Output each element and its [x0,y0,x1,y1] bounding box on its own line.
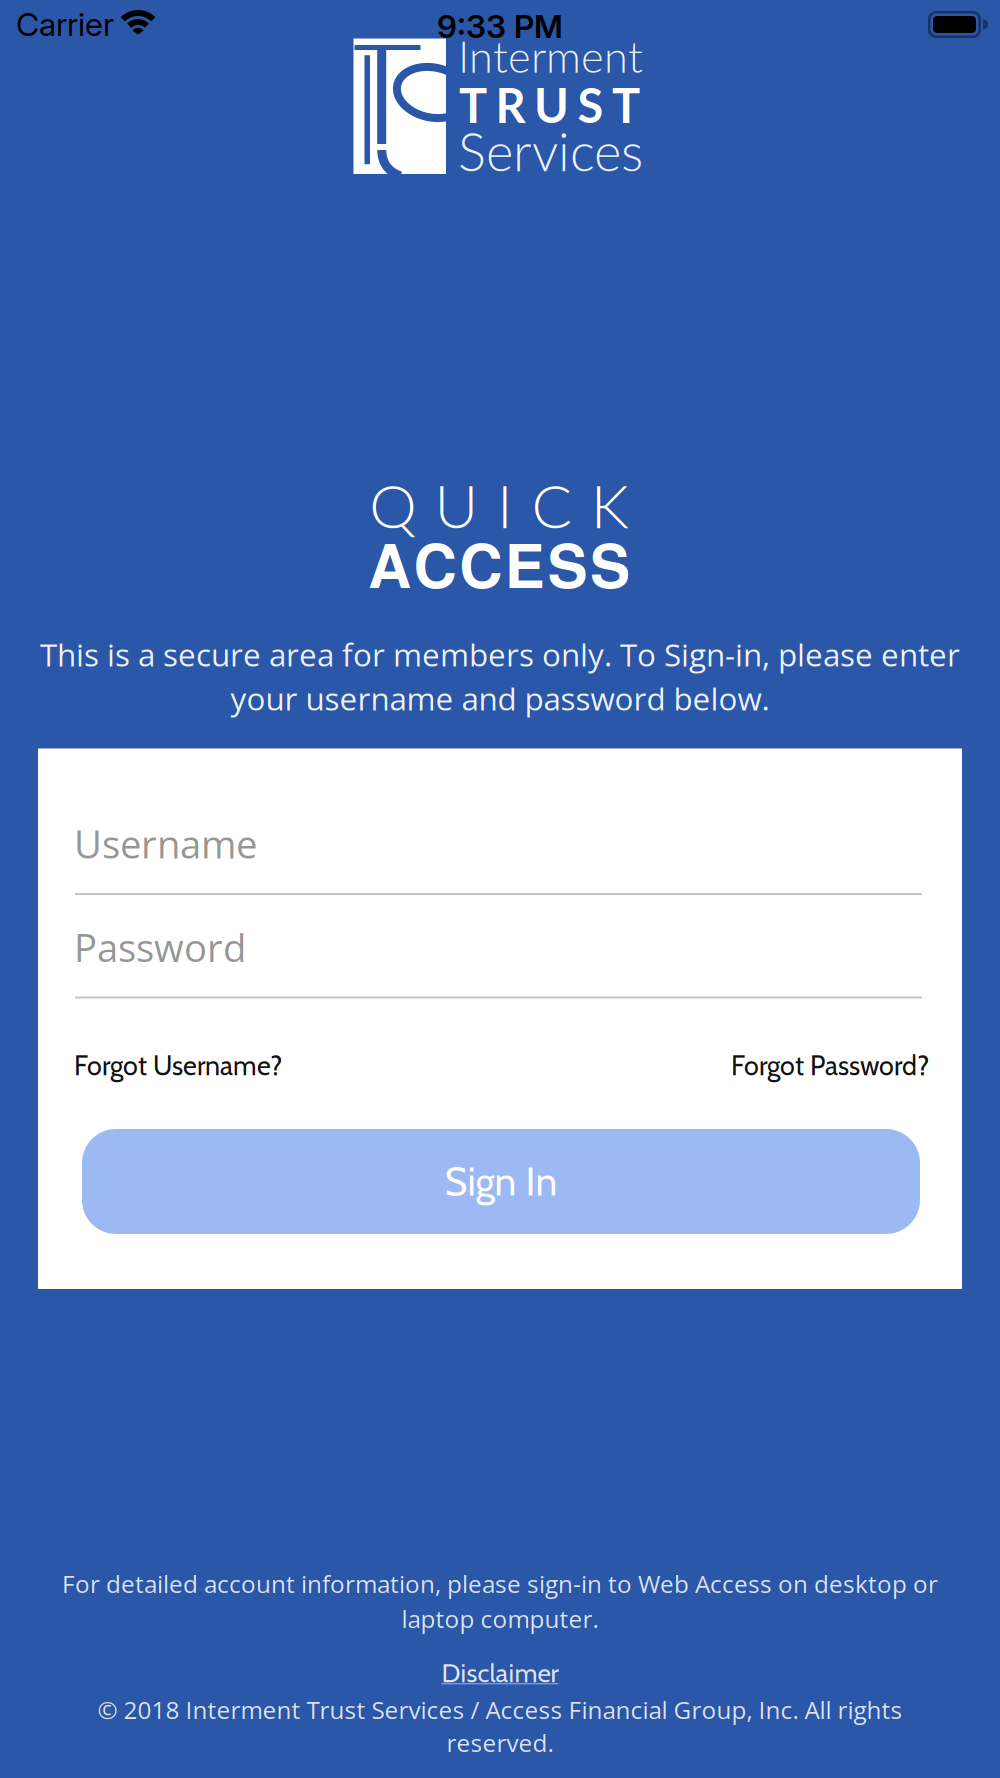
button[interactable]: Sign In [82,1129,920,1234]
staticText: Disclaimer [441,1657,558,1689]
staticText: C [414,520,457,606]
staticText: I [497,469,513,541]
staticText: Interment [458,30,643,82]
staticText: A [368,520,411,606]
staticText: T [459,76,487,133]
staticText: Password [74,921,246,973]
staticText: S [547,520,587,606]
staticText: Username [74,817,257,870]
staticText: C [531,469,572,541]
staticText: For detailed account information, please… [62,1567,938,1600]
staticText: 9:33 PM [437,7,563,46]
staticText: E [505,520,545,606]
staticText: Q [369,469,416,541]
button[interactable]: Forgot Username? [74,1049,282,1082]
staticText: Sign In [444,1158,557,1205]
staticText: R [495,76,525,133]
staticText: reserved. [446,1726,553,1759]
button[interactable]: Username [38,748,962,898]
staticText: Services [458,119,643,182]
staticText: Forgot Password? [731,1049,929,1082]
staticText: Forgot Username? [74,1049,282,1082]
staticText: © 2018 Interment Trust Services / Access… [97,1693,902,1726]
staticText: C [459,520,502,606]
staticText: Carrier [16,5,114,44]
button[interactable]: Forgot Password? [731,1049,929,1082]
staticText: K [591,469,629,541]
staticText: This is a secure area for members only. … [40,633,960,676]
staticText: T [612,76,640,133]
staticText: S [577,76,603,133]
staticText: S [590,520,630,606]
staticText: U [534,76,569,133]
button[interactable]: Password [38,852,962,1002]
staticText: U [435,469,479,541]
button[interactable]: Disclaimer [441,1657,558,1689]
staticText: laptop computer. [401,1602,598,1635]
staticText: your username and password below. [230,677,769,720]
